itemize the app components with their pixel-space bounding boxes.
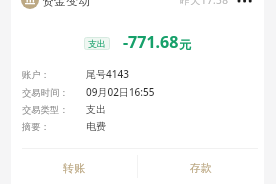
button[interactable]: 存款: [138, 149, 264, 184]
staticText: 支出: [86, 103, 106, 116]
staticText: 尾号4143: [86, 67, 129, 81]
staticText: 摘要：: [22, 121, 50, 133]
staticText: 交易时间：: [22, 87, 69, 99]
staticText: 交易类型：: [22, 104, 69, 116]
staticText: 元: [179, 37, 191, 52]
staticText: 转账: [63, 161, 85, 175]
staticText: -771.68: [123, 31, 179, 53]
staticText: 存款: [190, 161, 212, 175]
button[interactable]: 转账: [11, 149, 137, 184]
staticText: 昨天17:58: [180, 0, 229, 7]
staticText: 支出: [88, 38, 106, 49]
staticText: 资金变动: [42, 0, 90, 8]
button[interactable]: More options: [237, 0, 257, 11]
staticText: 09月02日16:55: [86, 85, 155, 99]
staticText: 账户：: [22, 69, 50, 81]
staticText: 电费: [86, 120, 106, 133]
